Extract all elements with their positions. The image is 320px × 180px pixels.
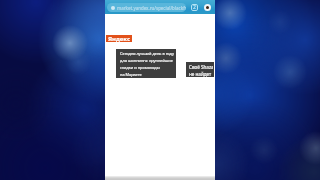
staticText: Своё Shazam не найдет <box>189 64 213 77</box>
button[interactable]: Своё Shazam не найдет <box>186 62 214 77</box>
button[interactable]: Account <box>204 4 211 11</box>
button[interactable]: market.yandex.ru/special/blackfriday <box>107 3 186 12</box>
staticText: 2 <box>193 4 196 11</box>
button[interactable]: Tabs <box>191 4 198 11</box>
staticText: market.yandex.ru/special/blackfriday <box>117 5 186 11</box>
staticText: Сегодня лучший день в году для шоппинга:… <box>120 51 174 77</box>
button[interactable]: Яндекс <box>106 35 132 42</box>
button[interactable]: Сегодня лучший день в году для шоппинга:… <box>116 49 176 78</box>
staticText: Яндекс <box>108 35 131 42</box>
